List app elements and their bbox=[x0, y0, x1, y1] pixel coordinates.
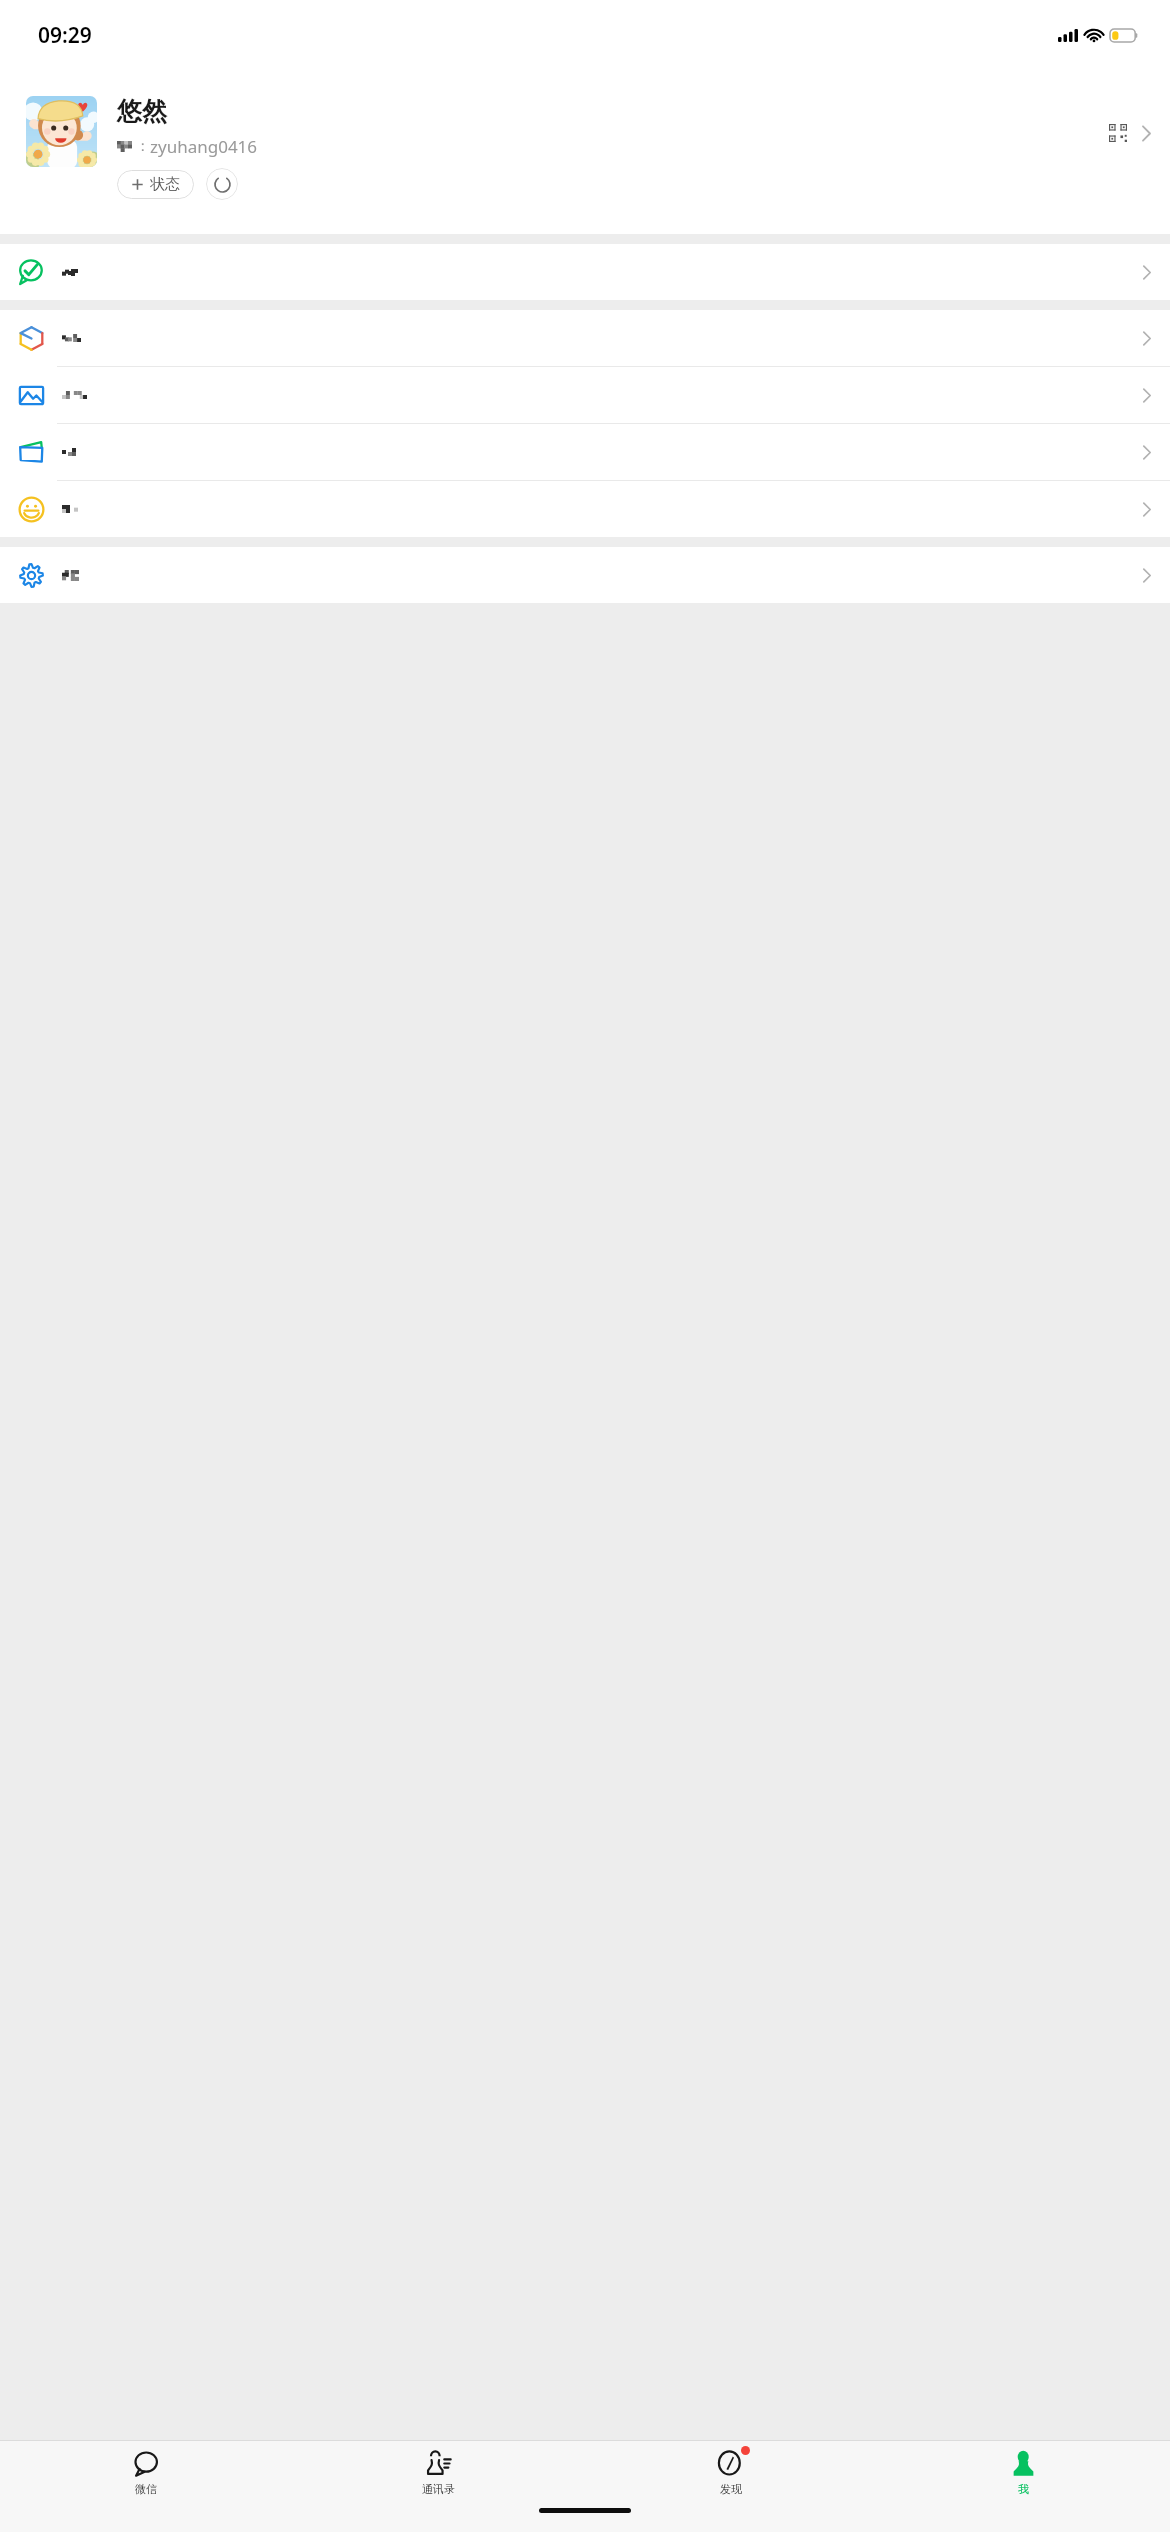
button[interactable]: Profile photo bbox=[0, 64, 1170, 234]
staticText: 悠然 bbox=[117, 96, 167, 127]
button[interactable] bbox=[0, 424, 1170, 480]
staticText: zyuhang0416 bbox=[150, 135, 258, 158]
button[interactable]: 发现 bbox=[584, 2441, 877, 2504]
button[interactable]: Refresh status bbox=[206, 168, 238, 200]
staticText: 发现 bbox=[720, 2482, 742, 2496]
button[interactable] bbox=[0, 547, 1170, 603]
button[interactable]: 通讯录 bbox=[292, 2441, 584, 2504]
staticText: 我 bbox=[1018, 2482, 1029, 2496]
button[interactable]: 微信 bbox=[0, 2441, 292, 2504]
button[interactable]: Profile photo bbox=[26, 96, 97, 167]
staticText: 微信 bbox=[135, 2482, 157, 2496]
button[interactable]: 我 bbox=[877, 2441, 1170, 2504]
button[interactable]: 状态 bbox=[117, 170, 194, 199]
button[interactable] bbox=[0, 481, 1170, 537]
button[interactable] bbox=[0, 310, 1170, 366]
staticText: 09:29 bbox=[38, 21, 92, 50]
button[interactable] bbox=[0, 244, 1170, 300]
button[interactable] bbox=[0, 367, 1170, 423]
staticText: 状态 bbox=[150, 175, 180, 194]
staticText: ： bbox=[135, 137, 150, 156]
staticText: 通讯录 bbox=[422, 2482, 455, 2496]
button[interactable]: My QR code bbox=[1103, 118, 1133, 148]
